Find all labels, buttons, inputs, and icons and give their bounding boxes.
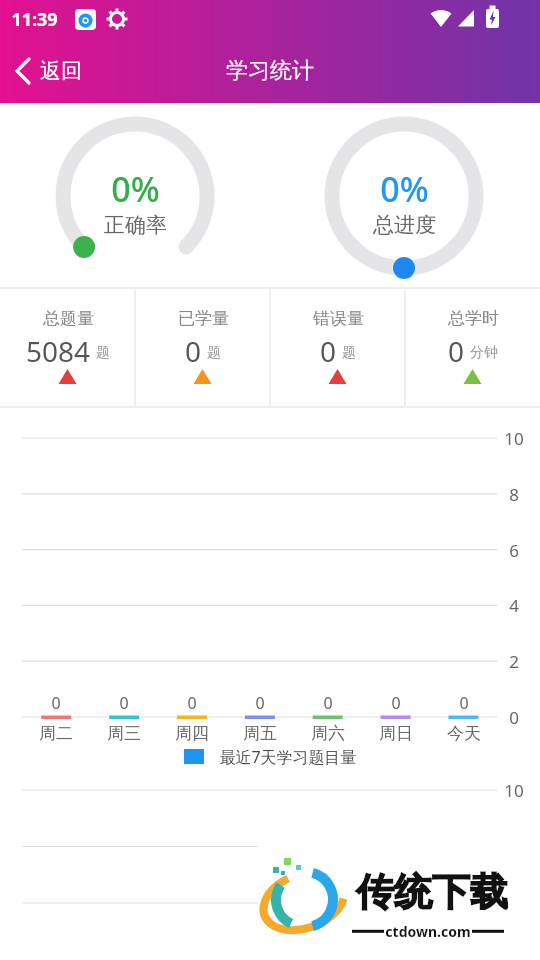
staticText: 周四 [175,723,209,744]
staticText: 总学时 [448,308,499,329]
staticText: 传统下载 [356,868,508,916]
staticText: 2 [509,650,519,673]
staticText: 11:39 [11,7,58,32]
staticText: 题 [342,344,356,362]
staticText: 已学量 [178,308,229,329]
staticText: 学习统计 [226,57,314,85]
staticText: 0 [320,332,337,366]
staticText: 总进度 [373,212,436,238]
staticText: 0% [111,166,160,210]
staticText: 0 [185,332,202,366]
staticText: 0% [380,166,429,210]
staticText: 0 [51,692,61,714]
staticText: 0 [255,692,265,714]
staticText: 返回 [40,58,82,84]
staticText: 0 [459,692,469,714]
staticText: 题 [207,344,221,362]
staticText: 分钟 [470,344,498,362]
staticText: 5084 [26,332,91,366]
staticText: 0 [119,692,129,714]
staticText: 0 [509,706,519,729]
staticText: 0 [323,692,333,714]
staticText: 10 [504,779,524,802]
button[interactable]: 返回 [8,50,108,92]
staticText: 总题量 [43,308,94,329]
staticText: 周三 [107,723,141,744]
staticText: ctdown.com [385,922,471,941]
staticText: 错误量 [313,308,364,329]
staticText: 题 [96,344,110,362]
staticText: 6 [509,539,519,562]
staticText: 周五 [243,723,277,744]
staticText: 正确率 [104,212,167,238]
staticText: 10 [504,427,524,450]
staticText: 0 [391,692,401,714]
staticText: 0 [187,692,197,714]
staticText: 周六 [311,723,345,744]
staticText: 最近7天学习题目量 [219,746,357,768]
staticText: 今天 [447,723,481,744]
staticText: 0 [448,332,465,366]
staticText: 8 [509,483,519,506]
staticText: 4 [509,594,519,617]
staticText: 周二 [39,723,73,744]
staticText: 周日 [379,723,413,744]
